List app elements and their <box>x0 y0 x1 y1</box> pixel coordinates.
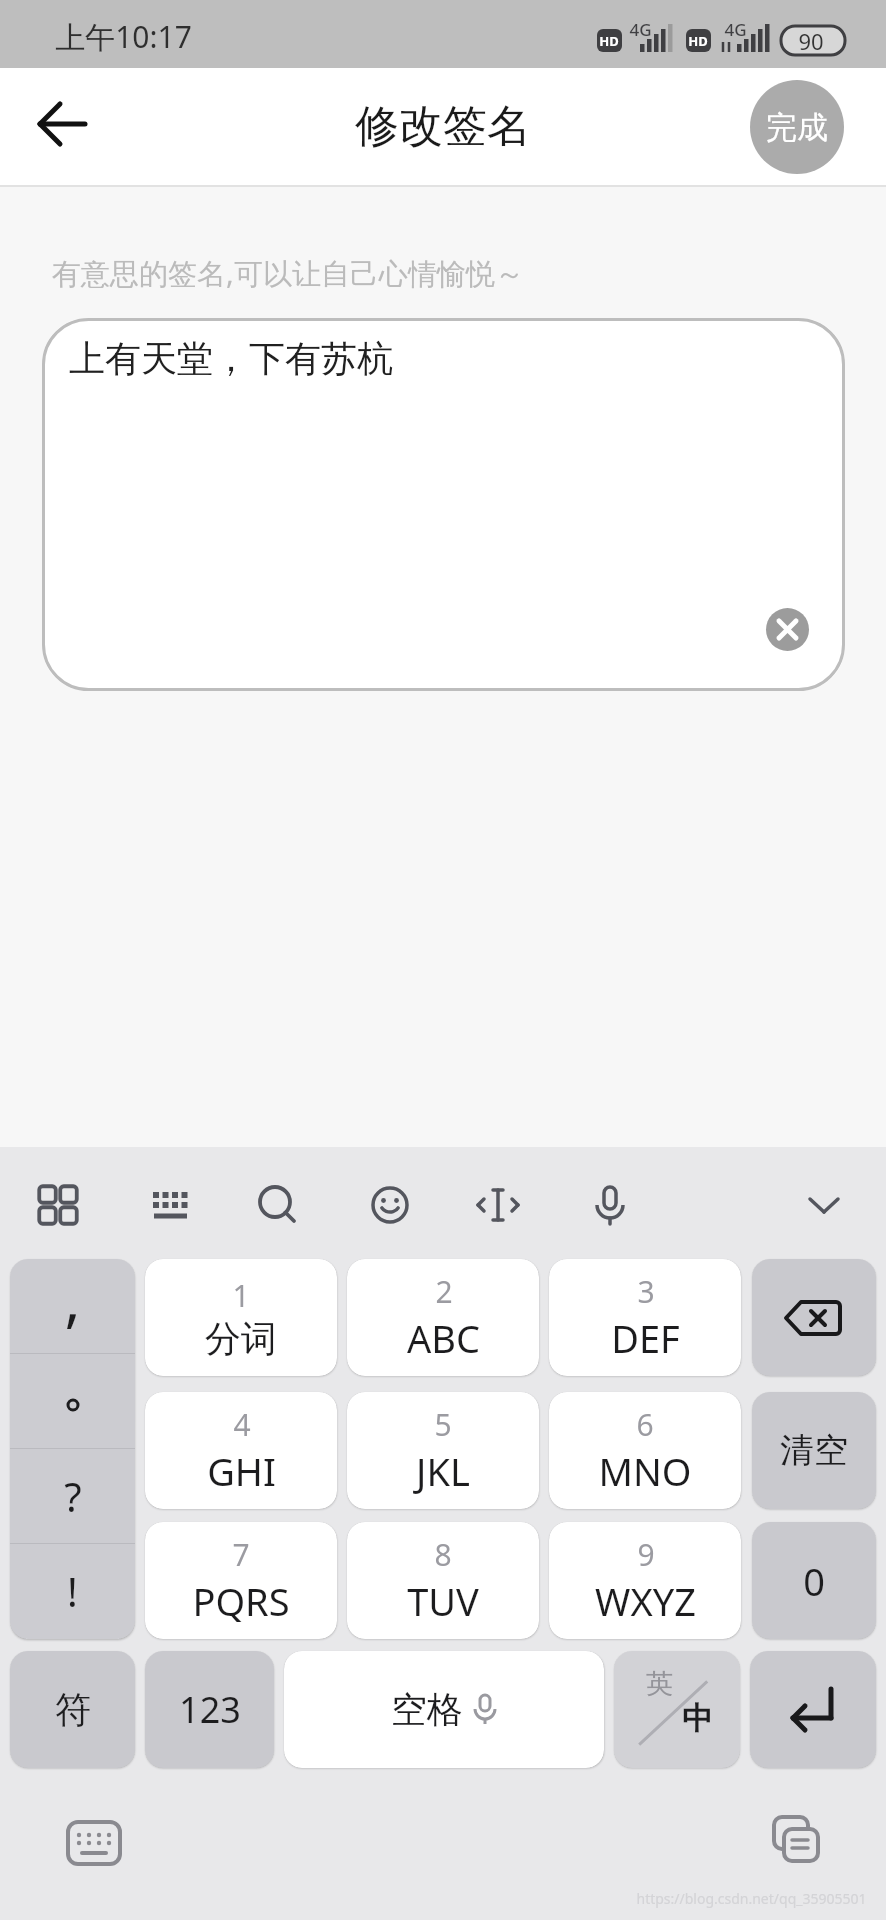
staticText: JKL <box>416 1445 470 1497</box>
staticText: 1 <box>232 1275 250 1316</box>
staticText: 7 <box>232 1534 250 1575</box>
staticText: 6 <box>636 1404 654 1445</box>
button[interactable]: 7 <box>145 1522 337 1639</box>
staticText: https://blog.csdn.net/qq_35905501 <box>636 1889 867 1908</box>
button[interactable] <box>752 1259 876 1376</box>
button[interactable]: 完成 <box>750 80 844 174</box>
staticText: 修改签名 <box>355 99 531 154</box>
button[interactable] <box>137 1172 203 1238</box>
staticText: 4G <box>629 18 652 41</box>
button[interactable]: 上有天堂，下有苏杭 <box>42 318 845 691</box>
button[interactable]: 空格 <box>284 1651 604 1768</box>
button[interactable]: 123 <box>145 1651 274 1768</box>
staticText: 中 <box>682 1699 713 1738</box>
staticText: GHI <box>207 1445 276 1497</box>
staticText: TUV <box>407 1575 479 1627</box>
staticText: MNO <box>598 1445 692 1497</box>
button[interactable]: 8 <box>347 1522 539 1639</box>
staticText: , <box>64 1259 81 1339</box>
button[interactable]: 3 <box>549 1259 741 1376</box>
button[interactable] <box>245 1172 311 1238</box>
staticText: 0 <box>803 1555 825 1607</box>
staticText: WXYZ <box>595 1575 696 1627</box>
button[interactable]: 1 <box>145 1259 337 1376</box>
button[interactable] <box>766 608 809 651</box>
staticText: 空格 <box>391 1687 463 1732</box>
staticText: 4G <box>724 18 747 41</box>
button[interactable] <box>465 1172 531 1238</box>
staticText: 5 <box>434 1404 452 1445</box>
button[interactable] <box>750 1651 876 1768</box>
button[interactable] <box>24 86 100 162</box>
staticText: PQRS <box>192 1575 290 1627</box>
staticText: 上有天堂，下有苏杭 <box>69 336 393 381</box>
button[interactable] <box>25 1172 91 1238</box>
staticText: 有意思的签名,可以让自己心情愉悦～ <box>52 253 524 293</box>
button[interactable] <box>64 1813 124 1873</box>
button[interactable]: 4 <box>145 1392 337 1509</box>
staticText: ! <box>67 1564 78 1618</box>
button[interactable] <box>10 1354 135 1448</box>
staticText: ? <box>64 1469 82 1523</box>
button[interactable] <box>766 1811 826 1871</box>
button[interactable] <box>791 1172 857 1238</box>
button[interactable]: 9 <box>549 1522 741 1639</box>
button[interactable] <box>577 1172 643 1238</box>
button[interactable]: 英 <box>614 1651 740 1768</box>
staticText: 2 <box>435 1271 453 1312</box>
staticText: 符 <box>55 1687 91 1732</box>
staticText: 上午10:17 <box>55 16 192 57</box>
button[interactable]: 6 <box>549 1392 741 1509</box>
button[interactable]: 0 <box>752 1522 876 1639</box>
button[interactable] <box>357 1172 423 1238</box>
staticText: 清空 <box>780 1429 848 1472</box>
staticText: HD <box>688 32 708 50</box>
staticText: 9 <box>637 1534 655 1575</box>
button[interactable]: , <box>10 1259 135 1353</box>
staticText: DEF <box>611 1312 680 1364</box>
staticText: 4 <box>233 1404 251 1445</box>
staticText: 123 <box>179 1685 241 1734</box>
staticText: 分词 <box>205 1316 277 1361</box>
staticText: 英 <box>646 1667 673 1701</box>
staticText: HD <box>599 32 619 50</box>
button[interactable]: 5 <box>347 1392 539 1509</box>
button[interactable]: ? <box>10 1449 135 1543</box>
staticText: 8 <box>434 1534 452 1575</box>
button[interactable]: 符 <box>10 1651 135 1768</box>
button[interactable]: ! <box>10 1544 135 1638</box>
staticText: 90 <box>798 26 824 56</box>
staticText: 3 <box>637 1271 655 1312</box>
staticText: ABC <box>407 1312 480 1364</box>
staticText: 完成 <box>766 108 828 147</box>
button[interactable]: 清空 <box>752 1392 876 1509</box>
button[interactable]: 2 <box>347 1259 539 1376</box>
